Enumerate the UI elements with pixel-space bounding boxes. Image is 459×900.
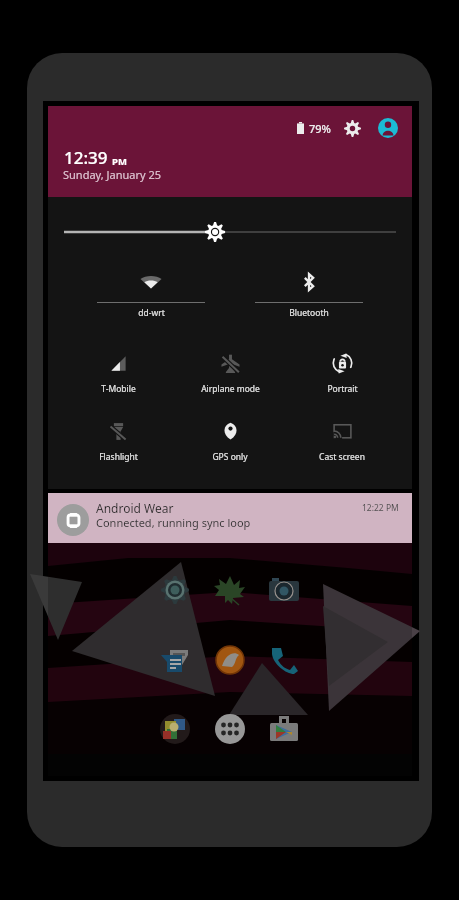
staticText: Android Wear <box>96 500 174 516</box>
staticText: GPS only <box>212 451 248 463</box>
button[interactable]: Portrait <box>286 347 398 399</box>
staticText: Airplane mode <box>201 383 260 395</box>
staticText: 12:22 PM <box>362 502 399 514</box>
button[interactable]: Flashlight <box>62 415 174 467</box>
staticText: T-Mobile <box>101 383 136 395</box>
staticText: Portrait <box>327 383 358 395</box>
staticText: 12:39 <box>64 146 108 169</box>
button[interactable]: User account <box>378 118 398 138</box>
button[interactable]: Cast screen <box>286 415 398 467</box>
staticText: Bluetooth <box>289 307 329 319</box>
staticText: Cast screen <box>319 451 365 463</box>
button[interactable]: GPS only <box>174 415 286 467</box>
other: Android Wear <box>57 504 89 536</box>
staticText: Flashlight <box>99 451 138 463</box>
staticText: Connected, running sync loop <box>96 515 251 530</box>
staticText: Sunday, January 25 <box>63 167 162 182</box>
staticText: PM <box>112 155 127 168</box>
staticText: 79% <box>309 121 331 136</box>
button[interactable] <box>48 197 412 259</box>
staticText: dd-wrt <box>138 307 165 319</box>
button[interactable]: Airplane mode <box>174 347 286 399</box>
button[interactable]: Android Wear <box>48 493 412 543</box>
button[interactable]: dd-wrt <box>72 266 230 321</box>
button[interactable]: T-Mobile <box>62 347 174 399</box>
button[interactable]: Bluetooth <box>230 266 388 321</box>
button[interactable]: Settings <box>344 120 361 137</box>
